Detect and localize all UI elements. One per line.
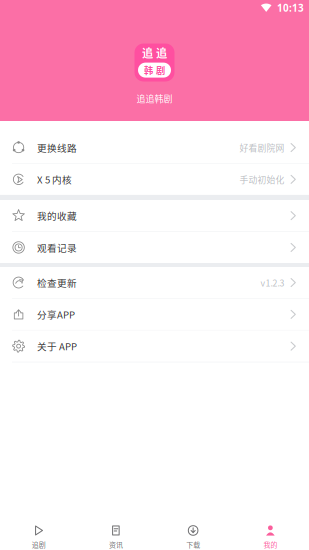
staticText: X 5 内核 xyxy=(37,172,72,186)
button[interactable]: 追剧 xyxy=(0,511,77,550)
staticText: 追追韩剧 xyxy=(136,92,172,105)
button[interactable]: 我的 xyxy=(232,511,309,550)
button[interactable]: 关于 APP xyxy=(0,331,309,362)
button[interactable]: 分享APP xyxy=(0,299,309,331)
staticText: 检查更新 xyxy=(37,276,77,289)
staticText: 剧 xyxy=(156,63,165,77)
button[interactable]: 更换线路 xyxy=(0,132,309,164)
staticText: 我的收藏 xyxy=(37,209,77,223)
staticText: 追 xyxy=(156,44,167,61)
staticText: 更换线路 xyxy=(37,141,77,154)
staticText: 观看记录 xyxy=(37,240,77,254)
button[interactable]: 观看记录 xyxy=(0,232,309,263)
button[interactable]: 资讯 xyxy=(77,511,154,550)
staticText: v1.2.3 xyxy=(260,276,284,289)
button[interactable]: 我的收藏 xyxy=(0,200,309,232)
staticText: 我的 xyxy=(263,540,277,550)
button[interactable]: X 5 内核 xyxy=(0,164,309,195)
staticText: 追 xyxy=(142,44,153,61)
button[interactable]: 下载 xyxy=(154,511,232,550)
staticText: 韩 xyxy=(144,63,153,77)
staticText: 下载 xyxy=(186,540,200,550)
button[interactable]: 检查更新 xyxy=(0,267,309,299)
staticText: 10:13 xyxy=(277,1,304,14)
staticText: 资讯 xyxy=(109,540,123,550)
staticText: 追剧 xyxy=(32,540,46,550)
staticText: 手动初始化 xyxy=(239,173,284,186)
staticText: 分享APP xyxy=(37,307,75,321)
staticText: 关于 APP xyxy=(37,339,77,353)
staticText: 好看剧院网 xyxy=(239,141,284,154)
